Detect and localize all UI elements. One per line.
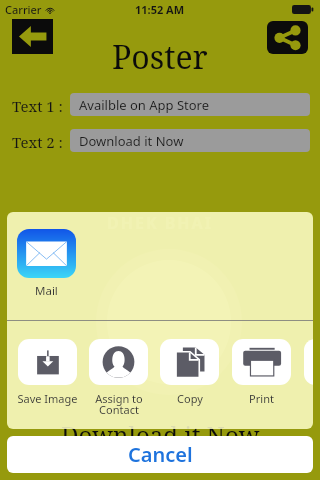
staticText: Assign to Contact [95, 391, 143, 418]
staticText: Copy [177, 391, 203, 406]
staticText: Download it Now [79, 132, 184, 150]
button[interactable]: Assign to Contact [89, 339, 148, 385]
button[interactable]: More [304, 339, 313, 385]
button[interactable]: Print [232, 339, 291, 385]
button[interactable]: Save Image [18, 339, 77, 385]
staticText: Carrier [5, 2, 42, 17]
button[interactable]: Share [267, 21, 308, 54]
staticText: Download it Now [61, 418, 260, 451]
staticText: 11:52 AM [135, 2, 185, 17]
staticText: Mail [35, 283, 58, 299]
button[interactable]: Availble on App Store [70, 93, 310, 116]
staticText: Print [249, 391, 274, 406]
button[interactable]: Mail [17, 229, 76, 278]
staticText: Poster [112, 35, 208, 79]
staticText: Save Image [17, 391, 78, 406]
staticText: Availble on App Store [79, 96, 210, 114]
staticText: Text 1 : [12, 96, 63, 116]
staticText: Text 2 : [12, 132, 63, 152]
button[interactable]: Copy [160, 339, 219, 385]
button[interactable]: Download it Now [70, 129, 310, 152]
staticText: Cancel [128, 441, 193, 468]
button[interactable]: Cancel [7, 436, 313, 473]
button[interactable]: Back [12, 19, 53, 54]
